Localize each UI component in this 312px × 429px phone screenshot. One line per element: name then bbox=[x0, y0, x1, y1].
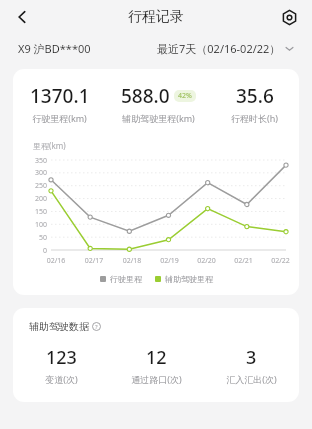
staticText: 最近7天（02/16-02/22） bbox=[157, 41, 281, 56]
button[interactable]: 辅助驾驶数据 bbox=[13, 308, 299, 402]
staticText: 变道(次) bbox=[45, 373, 78, 385]
staticText: 35.6 bbox=[236, 83, 274, 109]
staticText: 02/16 bbox=[37, 256, 75, 266]
staticText: 300 bbox=[15, 168, 47, 178]
staticText: 02/17 bbox=[75, 256, 113, 266]
button[interactable]: Settings bbox=[274, 2, 304, 32]
staticText: 150 bbox=[15, 207, 47, 217]
staticText: 0 bbox=[15, 246, 47, 256]
staticText: 02/19 bbox=[151, 256, 188, 266]
staticText: 42% bbox=[178, 91, 192, 101]
button[interactable]: 辅助驾驶数据 bbox=[29, 320, 101, 333]
staticText: ? bbox=[95, 323, 98, 331]
staticText: 辅助驾驶里程(km) bbox=[122, 112, 195, 124]
staticText: 123 bbox=[46, 345, 77, 370]
staticText: 588.0 bbox=[121, 83, 170, 109]
staticText: 行程记录 bbox=[128, 8, 184, 26]
staticText: 350 bbox=[15, 156, 47, 166]
button[interactable]: 最近7天（02/16-02/22） bbox=[157, 41, 294, 56]
staticText: 辅助驾驶数据 bbox=[29, 320, 89, 333]
staticText: 汇入汇出(次) bbox=[226, 373, 277, 385]
staticText: 通过路口(次) bbox=[131, 373, 182, 385]
staticText: 行驶里程(km) bbox=[32, 112, 87, 124]
staticText: 02/20 bbox=[188, 256, 225, 266]
staticText: 02/22 bbox=[262, 256, 299, 266]
staticText: 50 bbox=[15, 233, 47, 243]
button[interactable]: 1370.1 bbox=[13, 69, 299, 295]
staticText: 12 bbox=[146, 345, 167, 370]
staticText: 02/21 bbox=[225, 256, 262, 266]
staticText: 行驶里程 bbox=[110, 274, 142, 284]
staticText: 02/18 bbox=[113, 256, 151, 266]
staticText: 1370.1 bbox=[30, 83, 90, 109]
button[interactable]: Back bbox=[7, 2, 37, 32]
staticText: 3 bbox=[246, 345, 257, 370]
staticText: 250 bbox=[15, 181, 47, 191]
staticText: 100 bbox=[15, 220, 47, 230]
other: Info bbox=[92, 322, 101, 331]
staticText: 里程(km) bbox=[33, 140, 66, 151]
staticText: 辅助驾驶里程 bbox=[165, 274, 213, 284]
staticText: 200 bbox=[15, 194, 47, 204]
staticText: X9 沪BD***00 bbox=[18, 41, 91, 56]
staticText: 行程时长(h) bbox=[231, 112, 278, 124]
